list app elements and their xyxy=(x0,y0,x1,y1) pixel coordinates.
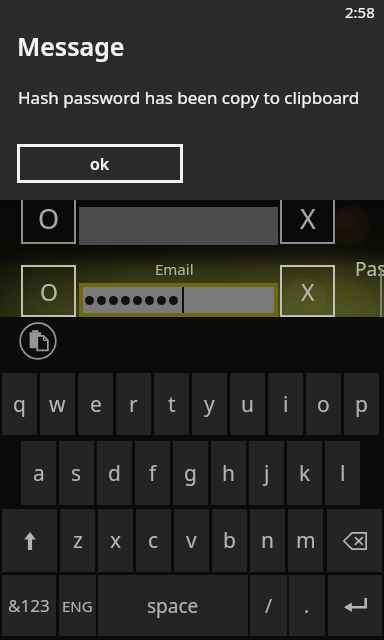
button[interactable]: e xyxy=(78,373,113,435)
button[interactable]: n xyxy=(250,509,285,572)
button[interactable]: p xyxy=(344,373,379,435)
staticText: / xyxy=(265,593,273,619)
staticText: f xyxy=(149,459,157,488)
staticText: e xyxy=(90,390,102,419)
button[interactable]: &123 xyxy=(2,575,56,636)
button[interactable]: s xyxy=(59,441,94,505)
staticText: x xyxy=(110,526,122,555)
staticText: b xyxy=(223,526,236,555)
button[interactable]: O xyxy=(21,265,76,317)
button[interactable]: w xyxy=(40,373,75,435)
staticText: u xyxy=(241,390,254,419)
button[interactable]: t xyxy=(154,373,189,435)
staticText: z xyxy=(73,526,83,555)
staticText: m xyxy=(296,526,316,555)
staticText: y xyxy=(204,390,215,419)
button[interactable]: i xyxy=(268,373,303,435)
button[interactable]: . xyxy=(289,575,325,636)
staticText: a xyxy=(33,459,45,488)
staticText: . xyxy=(304,593,310,619)
button[interactable]: ENG xyxy=(59,575,96,636)
staticText: 2:58 xyxy=(345,2,375,22)
staticText: n xyxy=(261,526,274,555)
button[interactable]: X xyxy=(280,265,335,317)
staticText: O xyxy=(40,276,58,307)
button[interactable]: k xyxy=(287,441,322,505)
staticText: i xyxy=(283,390,289,419)
staticText: g xyxy=(184,459,197,488)
button[interactable]: m xyxy=(288,509,323,572)
button[interactable]: z xyxy=(60,509,95,572)
button[interactable]: j xyxy=(249,441,284,505)
staticText: j xyxy=(264,459,270,488)
button[interactable]: v xyxy=(174,509,209,572)
button[interactable]: Paste xyxy=(19,322,57,360)
staticText: Email xyxy=(155,259,194,279)
button[interactable]: ok xyxy=(17,144,183,183)
staticText: ok xyxy=(90,153,110,175)
button[interactable]: o xyxy=(306,373,341,435)
staticText: O xyxy=(38,200,60,237)
button[interactable]: x xyxy=(98,509,133,572)
staticText: d xyxy=(108,459,121,488)
button[interactable]: h xyxy=(211,441,246,505)
staticText: q xyxy=(13,390,26,419)
button[interactable]: f xyxy=(135,441,170,505)
button[interactable]: space xyxy=(98,575,248,636)
staticText: ENG xyxy=(62,596,93,616)
staticText: o xyxy=(317,390,330,419)
button[interactable]: d xyxy=(97,441,132,505)
staticText: v xyxy=(186,526,197,555)
staticText: Message xyxy=(17,29,125,63)
button[interactable]: Enter xyxy=(328,575,382,636)
button[interactable]: O xyxy=(21,193,76,244)
button[interactable]: q xyxy=(2,373,37,435)
staticText: Pas xyxy=(355,256,384,282)
staticText: Hash password has been copy to clipboard xyxy=(18,86,360,109)
staticText: l xyxy=(340,459,346,488)
staticText: p xyxy=(355,390,368,419)
button[interactable]: g xyxy=(173,441,208,505)
button[interactable]: Backspace xyxy=(327,509,382,572)
staticText: s xyxy=(71,459,82,488)
button[interactable]: Shift xyxy=(2,509,57,572)
staticText: k xyxy=(299,459,311,488)
staticText: X xyxy=(300,200,316,237)
staticText: t xyxy=(168,390,176,419)
button[interactable]: y xyxy=(192,373,227,435)
button[interactable]: c xyxy=(136,509,171,572)
staticText: r xyxy=(129,390,138,419)
button[interactable]: b xyxy=(212,509,247,572)
button[interactable]: u xyxy=(230,373,265,435)
staticText: space xyxy=(147,593,199,619)
staticText: X xyxy=(301,276,315,307)
staticText: c xyxy=(148,526,159,555)
staticText: &123 xyxy=(8,594,50,617)
button[interactable]: / xyxy=(250,575,287,636)
staticText: h xyxy=(222,459,235,488)
staticText: w xyxy=(49,390,66,419)
button[interactable]: X xyxy=(280,193,335,244)
button[interactable] xyxy=(83,287,274,313)
button[interactable]: r xyxy=(116,373,151,435)
button[interactable]: a xyxy=(21,441,56,505)
button[interactable]: l xyxy=(325,441,360,505)
